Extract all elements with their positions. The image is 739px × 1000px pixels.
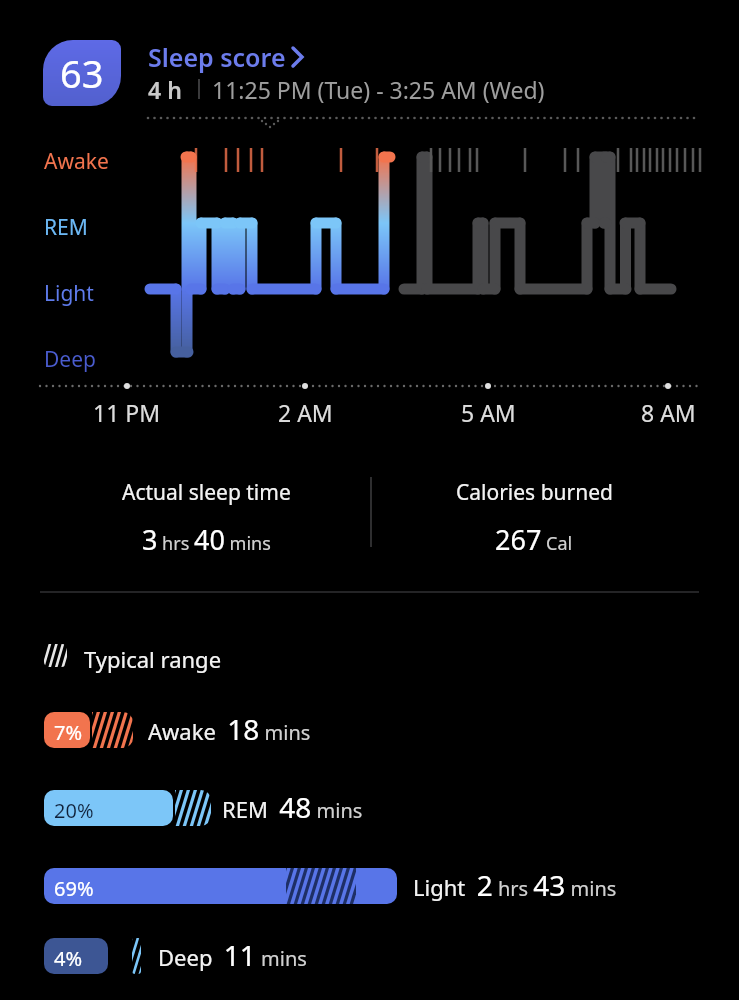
staticText: 8 AM: [641, 397, 696, 428]
staticText: 11:25 PM (Tue) - 3:25 AM (Wed): [212, 74, 545, 105]
staticText: Awake 18 mins: [148, 710, 311, 748]
staticText: Deep: [44, 345, 96, 374]
staticText: 5 AM: [461, 397, 516, 428]
staticText: Sleep score: [148, 40, 286, 74]
staticText: Awake: [44, 147, 109, 176]
staticText: 2 AM: [278, 397, 333, 428]
staticText: 3 hrs 40 mins: [142, 521, 271, 558]
staticText: Light: [44, 279, 94, 308]
staticText: Calories burned: [456, 478, 613, 507]
staticText: Deep 11 mins: [158, 936, 307, 974]
staticText: 4 h: [148, 74, 182, 105]
button[interactable]: 63: [40, 36, 540, 120]
staticText: 267 Cal: [495, 521, 573, 558]
staticText: REM: [44, 213, 88, 242]
staticText: 20%: [54, 797, 94, 824]
staticText: 11 PM: [93, 397, 161, 428]
staticText: 4%: [54, 945, 83, 972]
staticText: REM 48 mins: [222, 788, 363, 826]
staticText: 7%: [54, 719, 83, 746]
staticText: 63: [60, 47, 104, 99]
staticText: Light 2 hrs 43 mins: [413, 866, 617, 904]
staticText: Actual sleep time: [122, 478, 291, 507]
staticText: 69%: [54, 875, 94, 902]
staticText: Typical range: [84, 644, 222, 674]
